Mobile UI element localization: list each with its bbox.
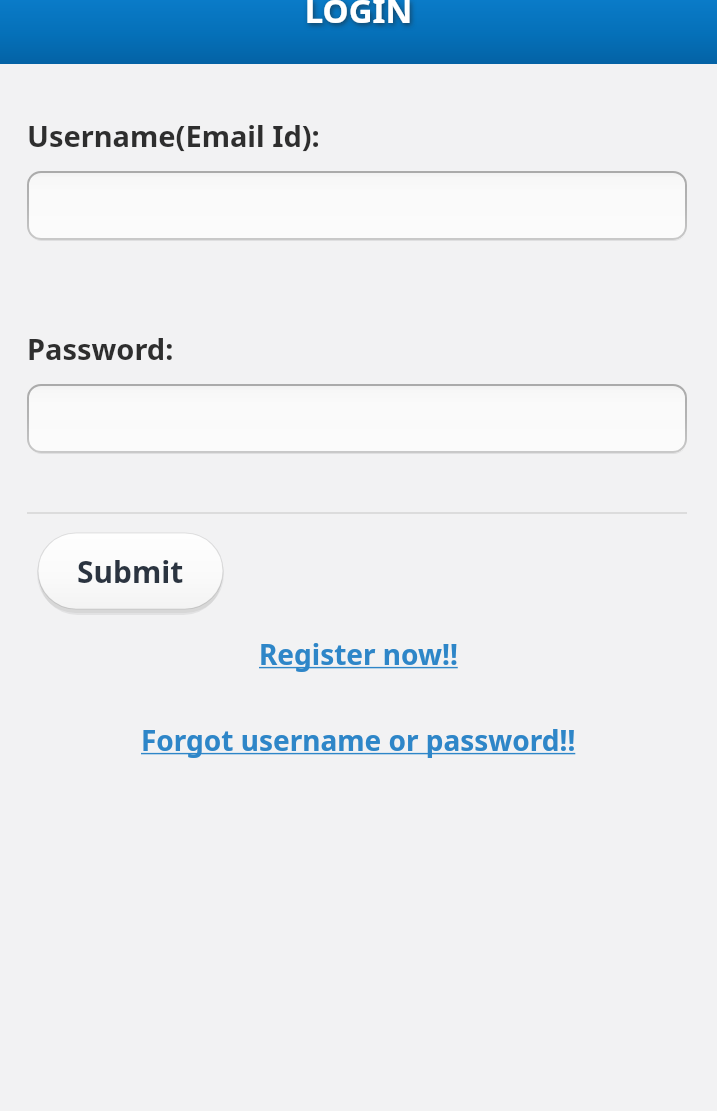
staticText: Forgot username or password!! <box>141 721 576 759</box>
button[interactable]: Forgot username or password!! <box>139 720 578 760</box>
staticText: Submit <box>77 551 184 592</box>
button[interactable]: Register now!! <box>257 634 460 674</box>
button[interactable]: Submit <box>37 533 224 613</box>
staticText: Register now!! <box>259 635 458 673</box>
button[interactable]: Text input field <box>27 384 687 453</box>
staticText: Username(Email Id): <box>27 116 320 155</box>
button[interactable]: Text input field <box>27 171 687 240</box>
staticText: LOGIN <box>0 0 717 33</box>
staticText: Password: <box>27 329 174 368</box>
